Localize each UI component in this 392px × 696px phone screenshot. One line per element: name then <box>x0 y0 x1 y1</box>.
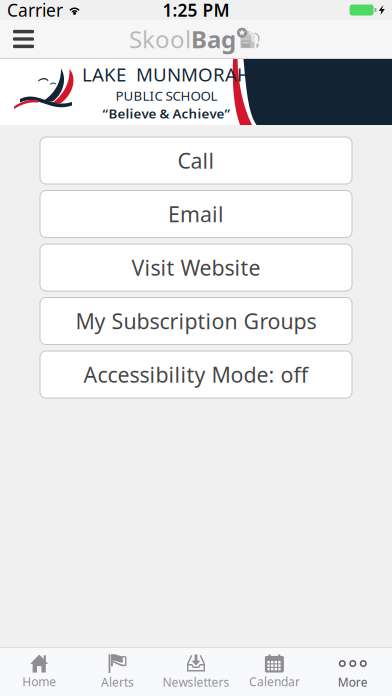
button[interactable]: Email <box>40 190 352 237</box>
button[interactable]: Visit Website <box>40 244 352 291</box>
button[interactable]: Menu <box>0 20 47 58</box>
button[interactable]: Call <box>40 137 352 184</box>
staticText: PUBLIC SCHOOL <box>115 87 217 104</box>
staticText: Carrier <box>7 0 63 21</box>
button[interactable]: Home <box>0 648 78 696</box>
staticText: Email <box>168 200 224 228</box>
button[interactable]: Alerts <box>78 648 157 696</box>
button[interactable]: Accessibility Mode: off <box>40 351 352 398</box>
staticText: Calendar <box>249 673 300 689</box>
staticText: Skool <box>129 23 191 55</box>
staticText: Home <box>22 673 56 689</box>
button[interactable]: More <box>314 648 392 696</box>
staticText: “Believe & Achieve” <box>102 104 230 122</box>
button[interactable]: Calendar <box>235 648 314 696</box>
button[interactable]: Newsletters <box>157 648 235 696</box>
staticText: Visit Website <box>131 253 260 282</box>
staticText: Accessibility Mode: off <box>83 360 308 389</box>
staticText: Newsletters <box>162 674 229 690</box>
staticText: Call <box>177 146 214 175</box>
staticText: Bag <box>191 23 236 55</box>
button[interactable]: My Subscription Groups <box>40 297 352 344</box>
staticText: LAKE MUNMORAH <box>82 62 251 87</box>
staticText: My Subscription Groups <box>75 307 316 335</box>
staticText: More <box>338 674 368 690</box>
staticText: Alerts <box>101 674 134 690</box>
staticText: 1:25 PM <box>162 0 229 21</box>
